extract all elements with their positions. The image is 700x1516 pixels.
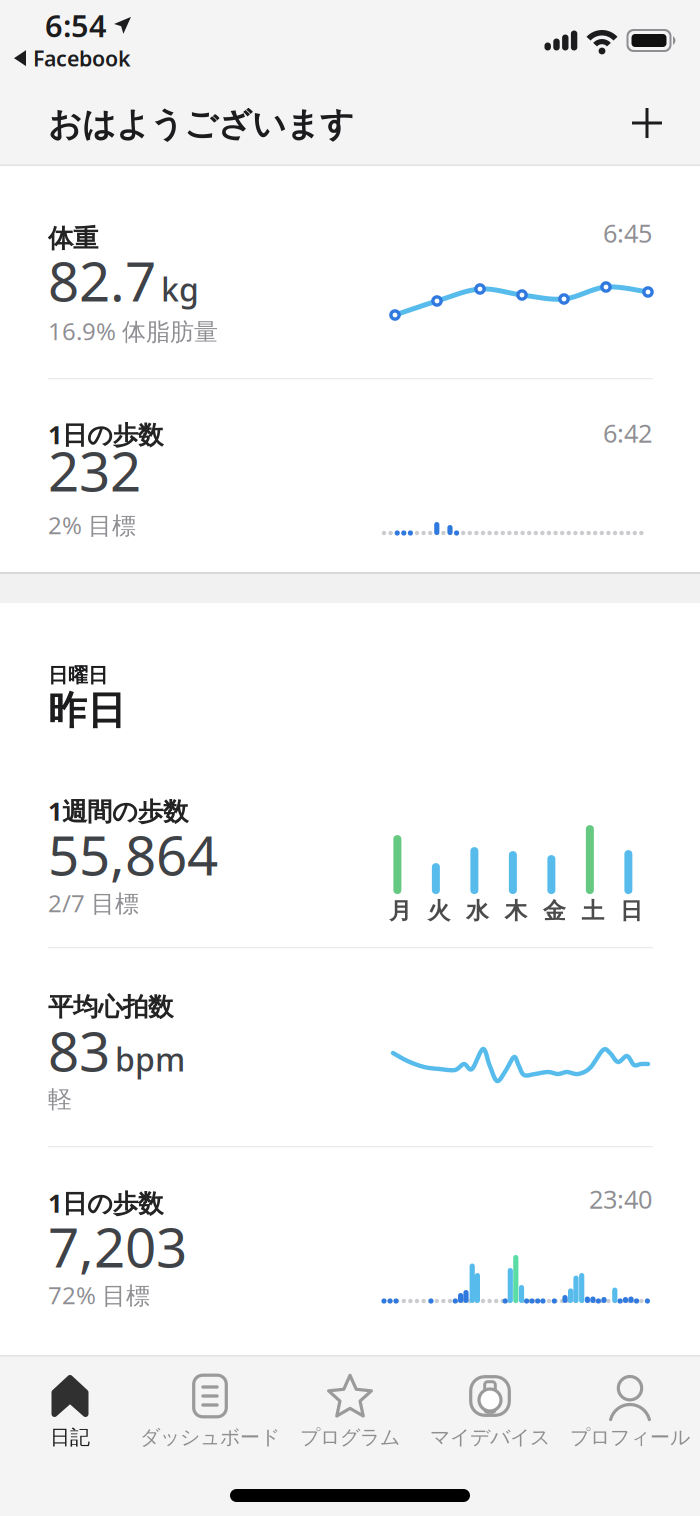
button[interactable]: 1週間の歩数 [0,786,700,947]
staticText: 72% 目標 [48,1279,150,1311]
button[interactable]: 体重 [0,166,700,378]
staticText: ダッシュボード [140,1425,280,1450]
button[interactable]: プロフィール [560,1375,700,1450]
staticText: 82.7 [48,244,156,317]
button[interactable]: プログラム [280,1375,420,1450]
button[interactable]: 日記 [0,1375,140,1450]
staticText: 1日の歩数 [48,417,163,451]
staticText: 月 [389,897,412,925]
staticText: 日記 [50,1425,90,1450]
staticText: 日 [620,897,643,925]
staticText: 木 [504,897,527,925]
staticText: 2/7 目標 [48,887,139,919]
staticText: 金 [543,897,566,925]
staticText: マイデバイス [430,1425,550,1450]
button[interactable]: Facebook [14,44,131,72]
staticText: bpm [115,1038,185,1080]
staticText: 火 [427,897,450,925]
staticText: 平均心拍数 [48,991,173,1023]
button[interactable]: 1日の歩数 [0,1147,700,1355]
staticText: おはようございます [48,104,354,145]
staticText: Facebook [33,44,131,72]
staticText: 1日の歩数 [48,1186,163,1220]
staticText: 昨日 [48,687,126,734]
staticText: プロフィール [570,1425,690,1450]
staticText: 7,203 [48,1210,187,1283]
button[interactable]: ダッシュボード [140,1375,280,1450]
staticText: 日曜日 [48,663,108,688]
button[interactable]: 平均心拍数 [0,948,700,1146]
staticText: 土 [581,897,604,925]
staticText: 6:54 [45,5,107,46]
staticText: 55,864 [48,818,218,891]
button[interactable]: 追加 [626,102,668,144]
button[interactable]: 1日の歩数 [0,379,700,572]
staticText: 2% 目標 [48,509,136,541]
staticText: 6:42 [603,416,652,450]
staticText: プログラム [300,1425,400,1450]
staticText: 1週間の歩数 [48,794,188,828]
staticText: 232 [48,434,141,507]
staticText: 水 [466,897,489,925]
button[interactable]: マイデバイス [420,1375,560,1450]
staticText: 23:40 [589,1182,652,1216]
staticText: 軽 [48,1084,72,1114]
staticText: kg [161,268,199,310]
staticText: 6:45 [603,216,652,250]
staticText: 体重 [48,223,98,254]
staticText: 83 [48,1014,110,1087]
staticText: 16.9% 体脂肪量 [48,315,218,347]
